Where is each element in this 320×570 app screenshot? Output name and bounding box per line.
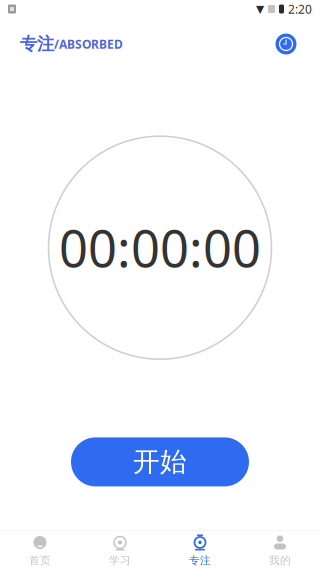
- button[interactable]: 我的: [240, 531, 320, 570]
- button[interactable]: 专注: [160, 531, 240, 570]
- staticText: 2:20: [288, 1, 312, 17]
- staticText: 00:00:00: [59, 214, 261, 281]
- button[interactable]: 首页: [0, 531, 80, 570]
- button[interactable]: 学习: [80, 531, 160, 570]
- button[interactable]: History: [272, 30, 300, 58]
- staticText: 开始: [133, 445, 187, 478]
- staticText: /ABSORBED: [54, 36, 123, 52]
- button[interactable]: 开始: [71, 437, 249, 486]
- staticText: 我的: [269, 554, 291, 567]
- staticText: 学习: [109, 554, 131, 567]
- staticText: 专注: [20, 33, 54, 55]
- staticText: ▼: [256, 3, 264, 15]
- staticText: 专注: [189, 554, 211, 567]
- staticText: 首页: [29, 554, 51, 567]
